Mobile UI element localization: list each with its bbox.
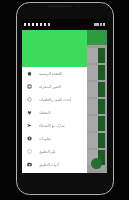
button[interactable]: الصفحة الرئيسية (22, 67, 87, 80)
button[interactable] (24, 116, 105, 131)
button[interactable] (24, 48, 105, 63)
button[interactable] (24, 99, 105, 114)
button[interactable]: معلومات (22, 132, 87, 145)
staticText: الصفحة الرئيسية (39, 71, 63, 76)
button[interactable]: الصور المتحركة (22, 80, 87, 93)
button[interactable]: Add (91, 158, 102, 169)
staticText: الصور المتحركة (39, 84, 61, 89)
staticText: أدوات التطبيق (39, 162, 59, 167)
staticText: شارك مع الأصدقاء (39, 123, 65, 128)
button[interactable]: أحدث الصور والخلفيات (22, 93, 87, 106)
button[interactable]: قيّم التطبيق (22, 145, 87, 158)
staticText: المفضلة (39, 111, 51, 115)
button[interactable] (24, 65, 105, 80)
button[interactable] (24, 133, 105, 148)
staticText: أحدث الصور والخلفيات (39, 97, 71, 102)
button[interactable]: أدوات التطبيق (22, 158, 87, 171)
button[interactable] (24, 150, 105, 165)
staticText: قيّم التطبيق (39, 149, 56, 154)
button[interactable] (24, 82, 105, 97)
button[interactable]: المفضلة (22, 106, 87, 119)
button[interactable]: شارك مع الأصدقاء (22, 119, 87, 132)
staticText: معلومات (39, 137, 52, 141)
